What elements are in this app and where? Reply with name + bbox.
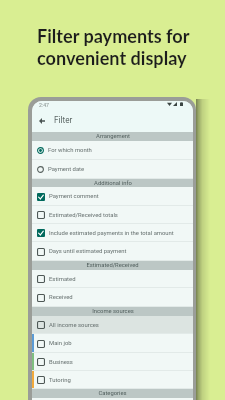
staticText: Categories — [98, 390, 127, 397]
staticText: All income sources — [49, 322, 99, 329]
staticText: Estimated/Received totals — [49, 212, 118, 219]
button[interactable]: Estimated — [32, 270, 193, 288]
button[interactable]: Back — [35, 114, 48, 127]
button[interactable]: Estimated/Received totals — [32, 206, 193, 224]
staticText: Main job — [49, 340, 72, 347]
button[interactable]: Back — [32, 109, 193, 130]
button[interactable]: Payment date — [32, 160, 193, 179]
button[interactable]: Received — [32, 288, 193, 307]
staticText: For which month — [48, 147, 92, 154]
staticText: Estimated — [49, 276, 76, 283]
staticText: Tutoring — [49, 377, 71, 384]
button[interactable]: Payment comment — [32, 187, 193, 206]
staticText: Estimated/Received — [86, 262, 139, 269]
staticText: Business — [49, 359, 73, 366]
button[interactable]: Tutoring — [32, 371, 193, 389]
button[interactable]: Days until estimated payment — [32, 242, 193, 261]
button[interactable]: Business — [32, 353, 193, 371]
staticText: Filter — [54, 115, 73, 125]
staticText: Payment comment — [49, 193, 99, 200]
staticText: Additional info — [94, 180, 132, 187]
button[interactable]: All income sources — [32, 316, 193, 334]
staticText: Income sources — [92, 308, 134, 315]
staticText: Include estimated payments in the total … — [49, 230, 174, 237]
button[interactable]: For which month — [32, 141, 193, 160]
staticText: Payment date — [48, 166, 85, 173]
staticText: 2:47 — [39, 102, 50, 108]
staticText: Received — [49, 294, 73, 301]
button[interactable]: Main job — [32, 334, 193, 353]
staticText: Filter payments for — [37, 25, 190, 47]
staticText: Arrangement — [96, 133, 130, 140]
button[interactable]: Include estimated payments in the total … — [32, 224, 193, 242]
staticText: Days until estimated payment — [49, 248, 127, 255]
staticText: convenient display — [37, 47, 187, 69]
